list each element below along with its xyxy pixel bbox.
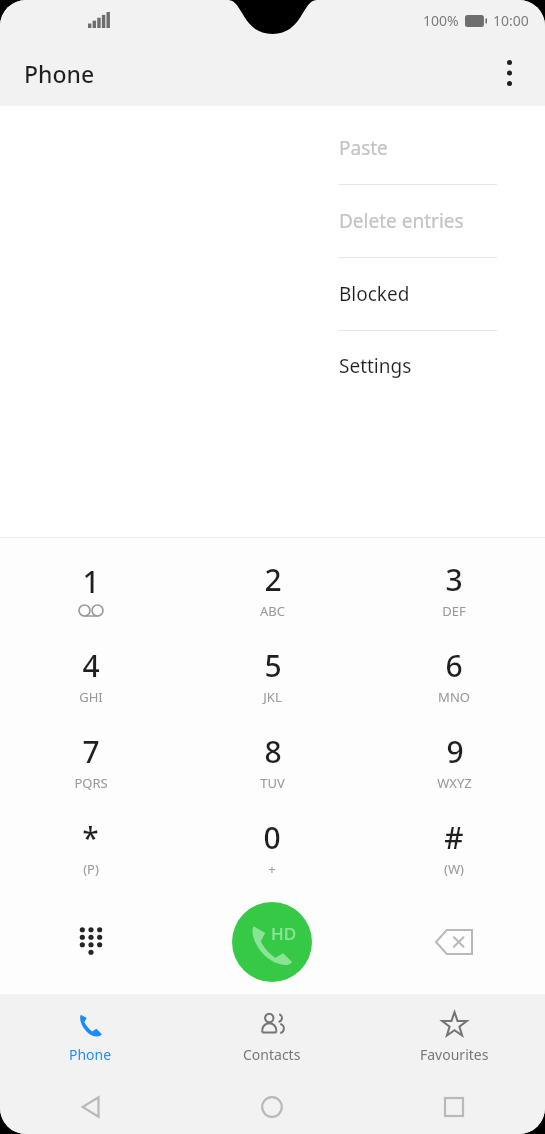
staticText: 5 [264,645,282,686]
staticText: 7 [82,731,100,772]
staticText: + [268,860,276,878]
staticText: 8 [264,731,282,772]
button[interactable]: More options [487,51,531,95]
button[interactable]: 9 [363,718,545,804]
staticText: Contacts [243,1045,301,1064]
staticText: (W) [444,860,464,878]
staticText: 2 [264,559,282,600]
staticText: JKL [263,688,282,706]
staticText: 0 [263,817,281,858]
staticText: Delete entries [339,208,464,234]
button[interactable]: 0 [181,804,363,890]
staticText: HD [271,922,297,945]
button[interactable]: 7 [0,718,181,804]
button[interactable]: 8 [181,718,363,804]
staticText: DEF [442,602,466,620]
button[interactable]: 6 [363,632,545,718]
staticText: Phone [69,1045,112,1064]
staticText: (P) [83,860,99,878]
button[interactable]: Home [181,1080,363,1134]
button[interactable]: Backspace [363,890,545,994]
button[interactable]: Call [232,902,312,982]
staticText: 9 [446,731,464,772]
staticText: Blocked [339,281,410,307]
button[interactable]: Phone [0,994,181,1080]
button[interactable]: Contacts [181,994,363,1080]
staticText: GHI [79,688,103,706]
staticText: MNO [438,688,470,706]
button[interactable]: Delete entries [317,185,519,257]
button[interactable]: Back [0,1080,181,1134]
staticText: Settings [339,353,412,379]
button[interactable]: Recents [363,1080,545,1134]
button[interactable]: Hide dialpad [0,890,181,994]
staticText: 1 [82,561,100,602]
button[interactable]: Favourites [363,994,545,1080]
button[interactable]: # [363,804,545,890]
button[interactable]: 5 [181,632,363,718]
staticText: TUV [260,774,285,792]
staticText: WXYZ [437,774,472,792]
staticText: ABC [260,602,285,620]
staticText: Phone [24,58,95,89]
button[interactable]: 2 [181,546,363,632]
button[interactable]: Paste [317,112,519,184]
staticText: # [444,817,464,858]
staticText: 100% [423,11,459,30]
staticText: 3 [445,559,463,600]
staticText: Paste [339,135,388,161]
button[interactable]: * [0,804,181,890]
staticText: 10:00 [493,11,529,30]
button[interactable]: 1 [0,546,181,632]
staticText: 4 [82,645,100,686]
staticText: * [82,817,99,858]
button[interactable]: Settings [317,331,519,400]
button[interactable]: Blocked [317,258,519,330]
button[interactable]: 4 [0,632,181,718]
staticText: 6 [445,645,463,686]
staticText: Favourites [420,1045,489,1064]
staticText: PQRS [74,774,108,792]
button[interactable]: 3 [363,546,545,632]
